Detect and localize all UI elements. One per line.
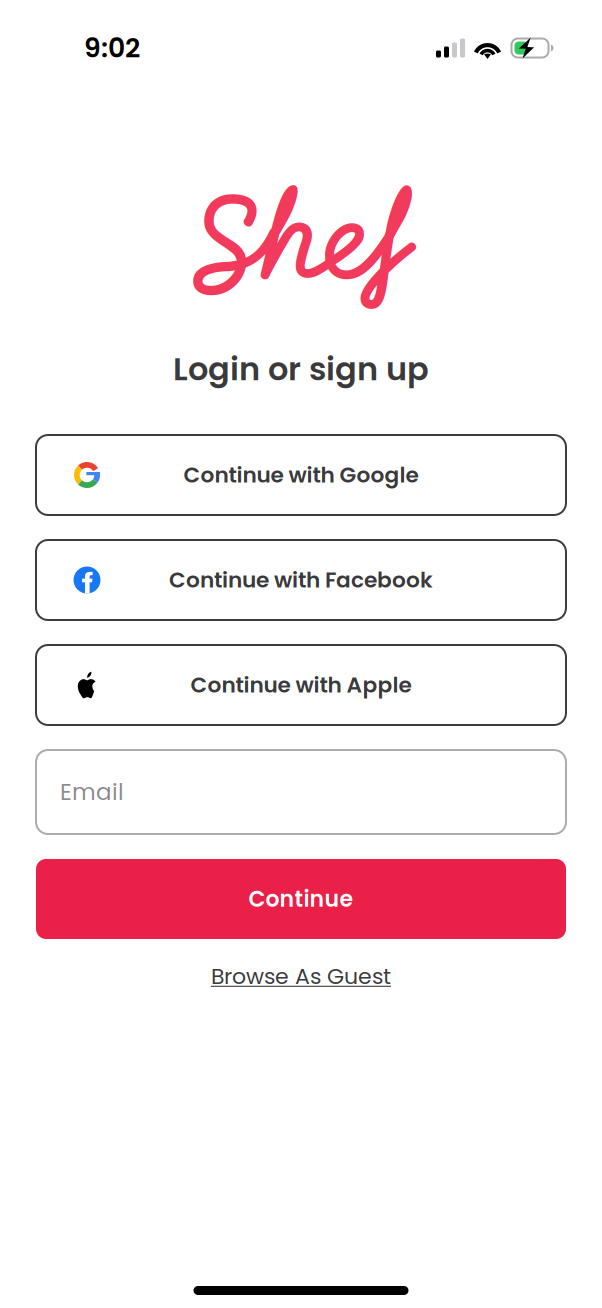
staticText: Continue with Facebook xyxy=(169,565,433,595)
button[interactable]: Browse As Guest xyxy=(203,953,399,1000)
staticText: Login or sign up xyxy=(173,347,429,391)
button[interactable]: Continue with Google xyxy=(36,435,566,515)
staticText: Email xyxy=(60,776,124,808)
button[interactable]: Continue xyxy=(36,859,566,939)
staticText: Continue xyxy=(248,884,353,914)
staticText: 9:02 xyxy=(84,29,140,67)
staticText: Browse As Guest xyxy=(211,961,391,992)
staticText: Continue with Apple xyxy=(190,670,411,700)
staticText: Continue with Google xyxy=(183,460,418,490)
button[interactable]: Continue with Apple xyxy=(36,645,566,725)
button[interactable]: Continue with Facebook xyxy=(36,540,566,620)
staticText: Shef xyxy=(189,171,412,305)
